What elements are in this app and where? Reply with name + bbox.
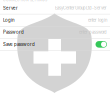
button[interactable]: Save password — [0, 38, 110, 50]
staticText: enter password — [79, 30, 107, 35]
staticText: Password — [3, 30, 24, 35]
button[interactable]: Server — [0, 2, 110, 14]
staticText: CONNECTION SETTINGS — [3, 0, 47, 2]
button[interactable]: Password — [0, 26, 110, 38]
staticText: Save password — [3, 42, 35, 47]
staticText: Login — [3, 17, 15, 23]
staticText: EasyCenterGroupLtd-Server — [55, 5, 107, 10]
staticText: enter login — [88, 18, 107, 23]
button[interactable]: Login — [0, 14, 110, 26]
staticText: Server — [3, 5, 18, 11]
